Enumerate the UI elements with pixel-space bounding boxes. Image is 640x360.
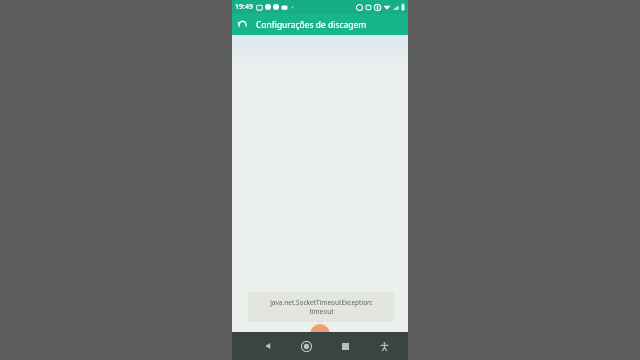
button[interactable]: Accessibility	[374, 336, 394, 356]
button[interactable]: Back	[258, 336, 278, 356]
button[interactable]: Recent apps	[335, 336, 355, 356]
staticText: Configurações de discagem	[256, 19, 367, 31]
button[interactable]: Dial	[310, 324, 330, 344]
button[interactable]: Home	[296, 336, 316, 356]
staticText: 19:49	[235, 2, 253, 12]
staticText: java.net.SocketTimeoutException: timeout	[270, 298, 373, 316]
button[interactable]: Back	[232, 14, 253, 35]
